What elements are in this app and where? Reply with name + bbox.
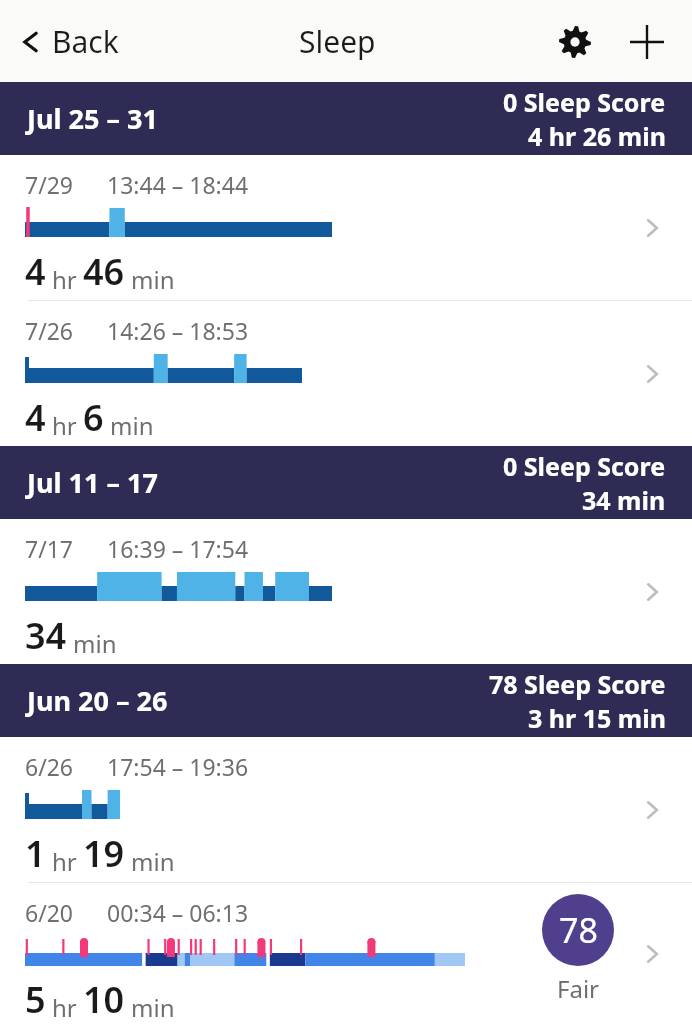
staticText: hr (52, 991, 77, 1024)
staticText: Jun 20 – 26 (27, 682, 168, 719)
button[interactable]: 6/20 (0, 883, 692, 1024)
staticText: min (131, 263, 175, 296)
button[interactable]: Settings (552, 19, 598, 65)
staticText: min (73, 627, 117, 660)
button[interactable]: 6/26 (0, 737, 692, 882)
staticText: hr (52, 845, 77, 878)
staticText: 7/17 (25, 533, 74, 564)
staticText: 13:44 – 18:44 (107, 169, 249, 200)
staticText: 34 (25, 611, 67, 660)
staticText: 78 (559, 907, 598, 953)
button[interactable]: 7/17 (0, 519, 692, 664)
button[interactable]: Back (14, 15, 123, 68)
staticText: 19 (83, 829, 125, 878)
staticText: hr (52, 263, 77, 296)
staticText: 5 (25, 975, 46, 1024)
staticText: 6/26 (25, 751, 74, 782)
staticText: min (131, 845, 175, 878)
staticText: 16:39 – 17:54 (107, 533, 249, 564)
button[interactable]: 7/26 (0, 301, 692, 446)
staticText: 4 hr 26 min (528, 119, 666, 153)
staticText: 0 Sleep Score (503, 85, 666, 119)
staticText: 3 hr 15 min (528, 701, 666, 735)
staticText: 46 (83, 247, 125, 296)
other: Open sleep details (630, 788, 674, 832)
staticText: 6 (83, 393, 104, 442)
staticText: min (131, 991, 175, 1024)
other: Open sleep details (630, 352, 674, 396)
staticText: min (110, 409, 154, 442)
staticText: hr (52, 409, 77, 442)
staticText: Fair (557, 972, 600, 1005)
other: Open sleep details (630, 206, 674, 250)
staticText: 78 Sleep Score (489, 667, 666, 701)
staticText: 10 (83, 975, 125, 1024)
staticText: 0 Sleep Score (503, 449, 666, 483)
staticText: Jul 11 – 17 (27, 464, 158, 501)
staticText: Back (52, 21, 119, 62)
staticText: Sleep (299, 21, 376, 62)
staticText: 1 (25, 829, 46, 878)
staticText: 34 min (582, 483, 666, 517)
staticText: 7/29 (25, 169, 74, 200)
staticText: 7/26 (25, 315, 74, 346)
other: Open sleep details (630, 932, 674, 976)
other: Open sleep details (630, 570, 674, 614)
staticText: 14:26 – 18:53 (107, 315, 249, 346)
staticText: 6/20 (25, 897, 74, 928)
staticText: Jul 25 – 31 (27, 100, 158, 137)
staticText: 17:54 – 19:36 (107, 751, 249, 782)
staticText: 00:34 – 06:13 (107, 897, 249, 928)
staticText: 4 (25, 393, 46, 442)
button[interactable]: Add sleep log (624, 19, 670, 65)
button[interactable]: 7/29 (0, 155, 692, 300)
staticText: 4 (25, 247, 46, 296)
